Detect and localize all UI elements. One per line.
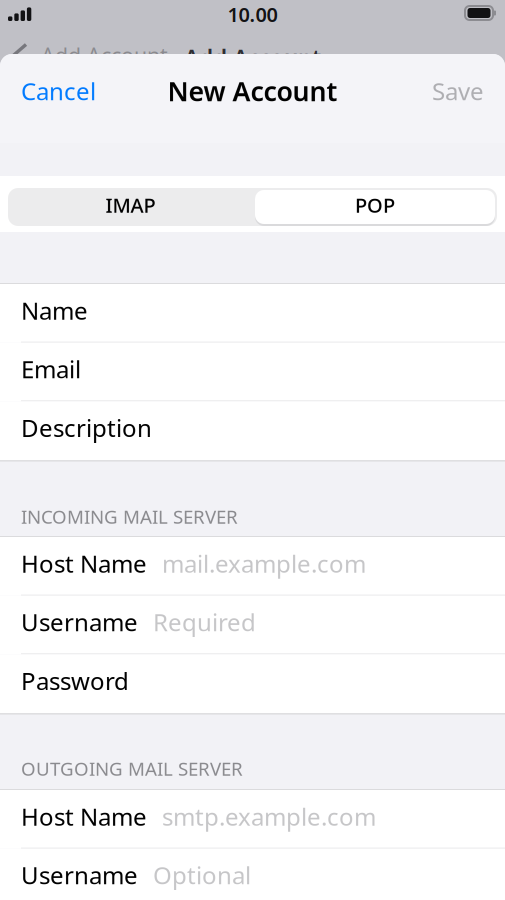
staticText: Description [21,412,152,444]
staticText: Username [21,859,138,891]
staticText: Save [432,75,484,107]
button[interactable]: Username [0,596,505,654]
button[interactable]: Username [0,849,505,900]
staticText: smtp.example.com [162,800,376,832]
button[interactable]: IMAP [8,188,253,226]
staticText: Optional [153,859,251,891]
staticText: Password [21,665,129,697]
staticText: IMAP [105,192,155,218]
button[interactable]: Name [0,284,505,343]
staticText: POP [355,192,395,218]
staticText: 10.00 [227,1,277,28]
staticText: Cancel [21,75,96,107]
button[interactable]: Password [0,654,505,713]
button[interactable]: Email [0,343,505,401]
staticText: Host Name [21,800,147,832]
staticText: INCOMING MAIL SERVER [21,504,238,529]
staticText: Host Name [21,547,147,579]
button[interactable]: Cancel [21,68,125,114]
staticText: OUTGOING MAIL SERVER [21,756,243,781]
button[interactable]: Host Name [0,537,505,596]
button[interactable]: Description [0,401,505,460]
staticText: Required [153,606,256,638]
staticText: Name [21,294,88,326]
button[interactable]: Save [400,68,484,114]
staticText: Email [21,353,81,385]
staticText: mail.example.com [162,547,366,579]
staticText: Username [21,606,138,638]
staticText: Add Account [41,41,168,69]
button[interactable]: Host Name [0,790,505,849]
button[interactable]: POP [253,188,497,226]
staticText: Add Account [184,43,321,73]
staticText: New Account [167,73,337,109]
